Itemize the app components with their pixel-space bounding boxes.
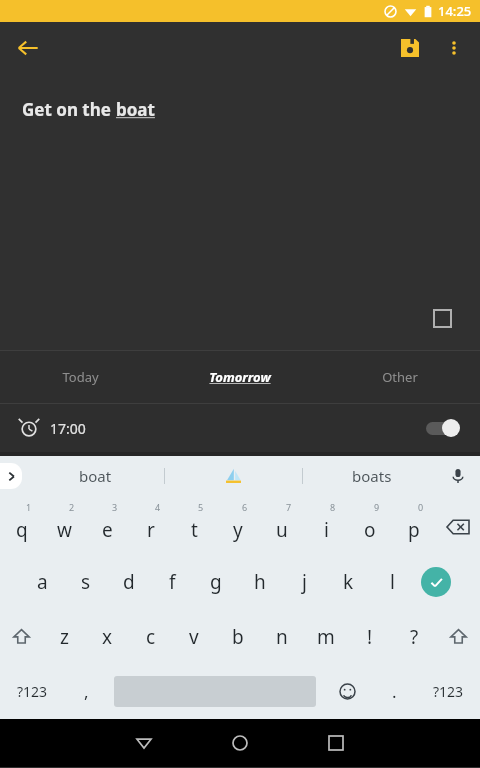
staticText: boat <box>116 98 155 121</box>
button[interactable]: ?123 <box>0 664 65 719</box>
staticText: 8 <box>330 501 336 513</box>
staticText: Other <box>382 368 418 386</box>
button[interactable]: j <box>282 554 326 609</box>
staticText: l <box>390 569 395 595</box>
staticText: p <box>408 517 420 543</box>
staticText: v <box>189 624 199 650</box>
staticText: f <box>169 569 176 595</box>
staticText: u <box>276 517 288 543</box>
staticText: k <box>343 569 354 595</box>
staticText: g <box>210 569 222 595</box>
staticText: 6 <box>242 501 248 513</box>
button[interactable]: k <box>326 554 370 609</box>
button[interactable]: Back <box>8 28 48 68</box>
button[interactable]: m <box>304 609 348 664</box>
button[interactable]: d <box>107 554 150 609</box>
button[interactable]: ? <box>392 609 436 664</box>
staticText: z <box>60 624 69 650</box>
button[interactable]: 2 <box>43 500 86 554</box>
button[interactable]: h <box>238 554 282 609</box>
button[interactable]: 3 <box>86 500 129 554</box>
staticText: 17:00 <box>50 419 86 438</box>
button[interactable]: boats <box>303 456 440 496</box>
button[interactable]: Back <box>96 719 192 767</box>
staticText: boat <box>79 466 112 486</box>
button[interactable]: 8 <box>304 500 348 554</box>
button[interactable]: g <box>194 554 238 609</box>
button[interactable]: l <box>370 554 414 609</box>
button[interactable]: 0 <box>392 500 436 554</box>
staticText: Today <box>62 368 99 386</box>
button[interactable]: 4 <box>129 500 172 554</box>
staticText: ! <box>367 624 373 650</box>
button[interactable]: Recents <box>288 719 384 767</box>
button[interactable]: 9 <box>348 500 392 554</box>
button[interactable]: v <box>172 609 216 664</box>
button[interactable]: ! <box>348 609 392 664</box>
button[interactable]: 1 <box>0 500 43 554</box>
staticText: 7 <box>286 501 292 513</box>
staticText: ?123 <box>17 682 48 701</box>
staticText: m <box>317 624 335 650</box>
button[interactable]: s <box>64 554 107 609</box>
button[interactable]: x <box>86 609 129 664</box>
staticText: ? <box>410 624 419 650</box>
button[interactable]: a <box>21 554 64 609</box>
button[interactable]: . <box>373 664 416 719</box>
button[interactable]: 17:00 <box>0 404 480 452</box>
button[interactable]: Today <box>0 351 160 403</box>
staticText: w <box>57 517 72 543</box>
button[interactable]: Tomorrow <box>160 351 320 403</box>
staticText: 2 <box>69 501 75 513</box>
staticText: j <box>302 569 307 595</box>
button[interactable]: boat <box>26 456 164 496</box>
button[interactable]: 5 <box>172 500 216 554</box>
button[interactable]: , <box>65 664 108 719</box>
staticText: x <box>102 624 113 650</box>
button[interactable]: More options <box>432 26 476 70</box>
staticText: Get on the <box>22 98 116 121</box>
button[interactable]: Other <box>320 351 480 403</box>
button[interactable]: Emoji <box>322 664 373 719</box>
button[interactable]: Backspace <box>436 500 480 554</box>
staticText: q <box>16 517 28 543</box>
staticText: 14:25 <box>438 2 472 20</box>
button[interactable]: Home <box>192 719 288 767</box>
staticText: 0 <box>418 501 424 513</box>
button[interactable]: f <box>150 554 194 609</box>
button[interactable]: Enter <box>414 554 458 609</box>
staticText: boats <box>352 466 392 486</box>
staticText: 5 <box>198 501 204 513</box>
staticText: e <box>102 517 113 543</box>
button[interactable]: c <box>129 609 172 664</box>
staticText: r <box>147 517 155 543</box>
staticText: s <box>81 569 91 595</box>
button[interactable]: n <box>260 609 304 664</box>
staticText: o <box>364 517 376 543</box>
staticText: 3 <box>112 501 118 513</box>
staticText: n <box>276 624 288 650</box>
button[interactable]: ?123 <box>416 664 480 719</box>
staticText: a <box>37 569 48 595</box>
staticText: 1 <box>26 501 32 513</box>
staticText: ?123 <box>433 682 464 701</box>
button[interactable]: 7 <box>260 500 304 554</box>
button[interactable]: Save <box>388 26 432 70</box>
staticText: t <box>191 517 198 543</box>
button[interactable]: z <box>43 609 86 664</box>
button[interactable]: b <box>216 609 260 664</box>
staticText: h <box>254 569 266 595</box>
staticText: d <box>123 569 135 595</box>
button[interactable]: Sailboat emoji <box>165 456 302 496</box>
button[interactable]: Shift <box>0 609 43 664</box>
button[interactable]: Done checkbox <box>430 306 454 330</box>
button[interactable]: 6 <box>216 500 260 554</box>
staticText: , <box>84 680 89 703</box>
button[interactable]: Voice input <box>440 456 476 496</box>
staticText: i <box>324 517 329 543</box>
button[interactable]: Expand suggestions <box>0 463 22 489</box>
staticText: Tomorrow <box>209 368 271 386</box>
staticText: 9 <box>374 501 380 513</box>
button[interactable]: Shift <box>436 609 480 664</box>
